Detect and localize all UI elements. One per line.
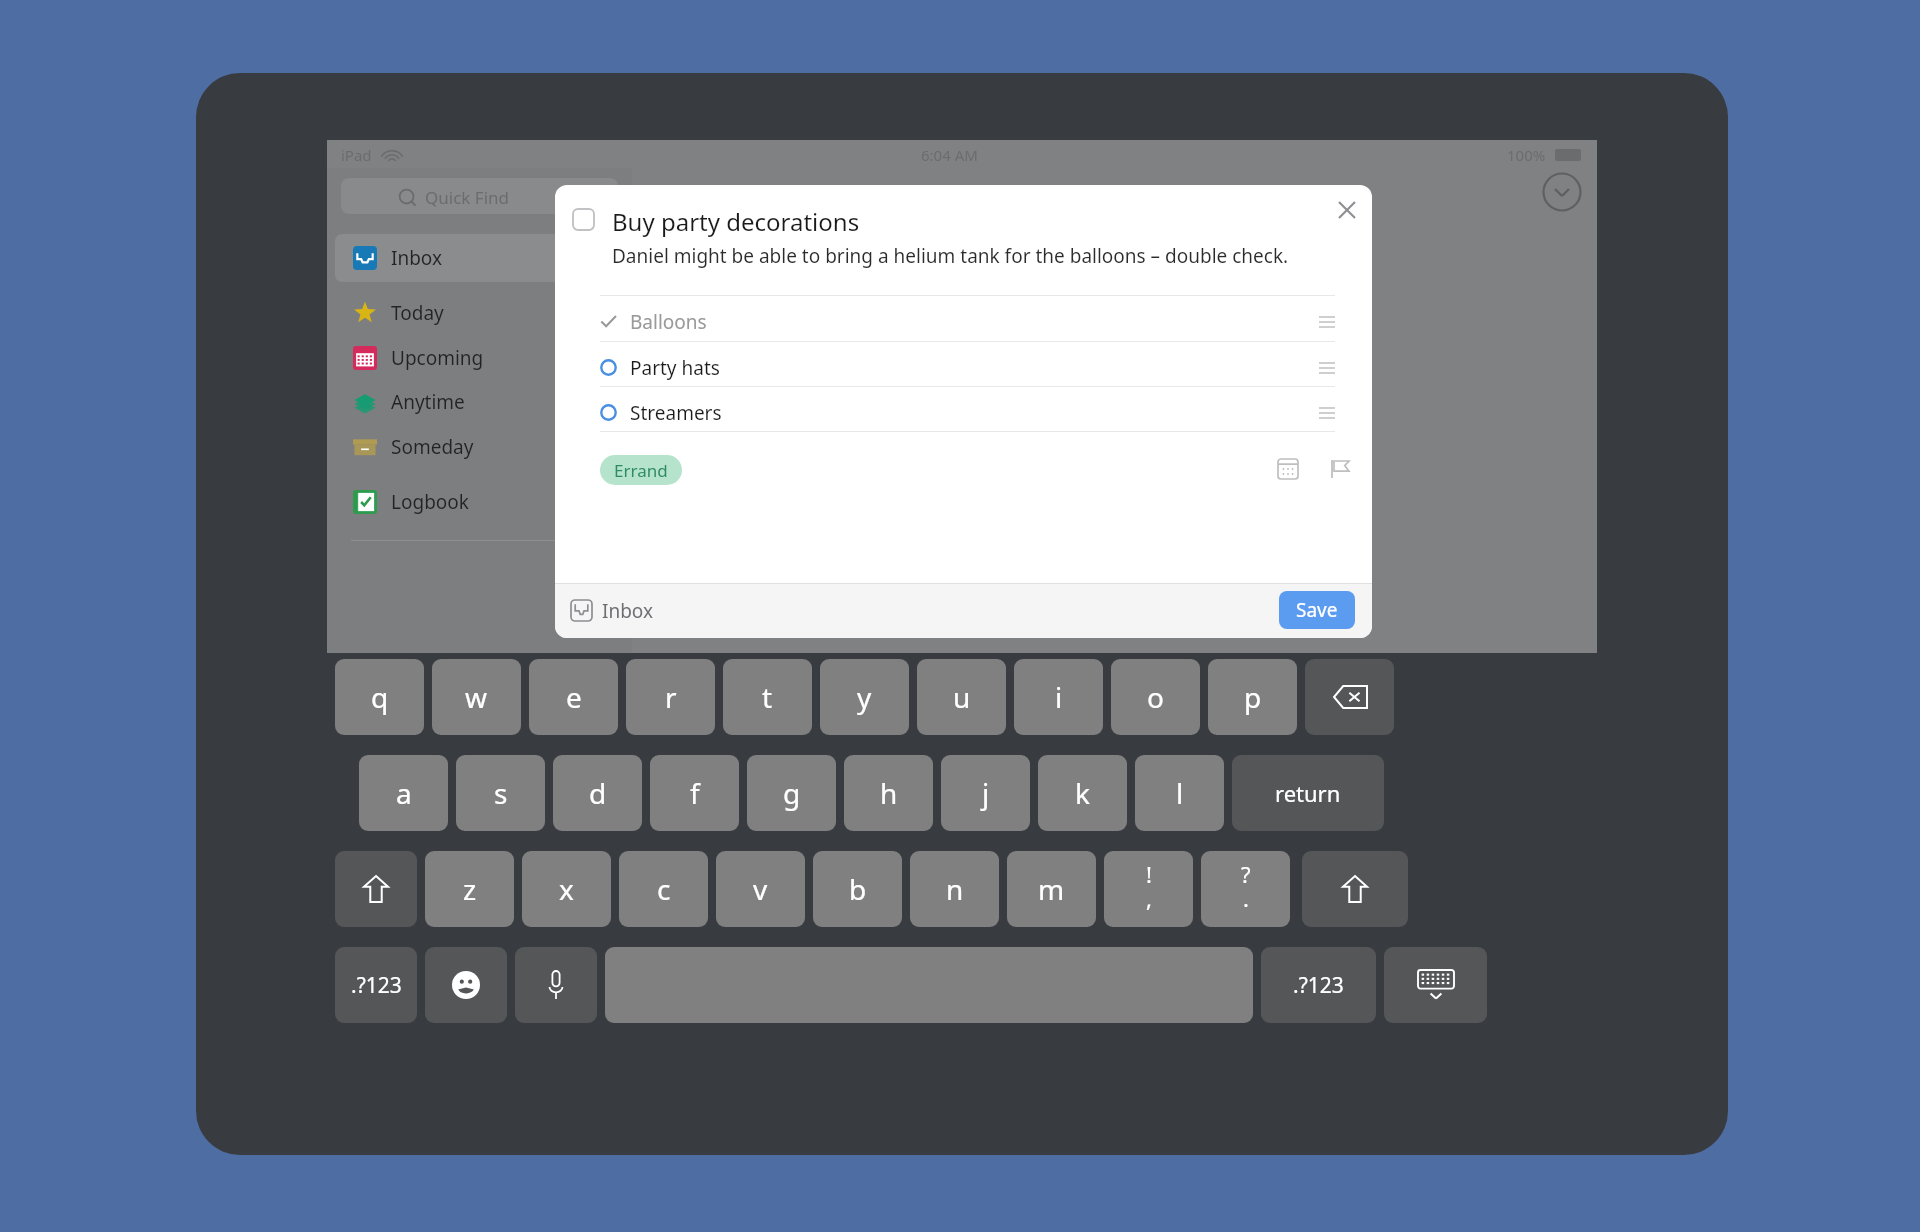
button[interactable]: Errand (600, 455, 682, 485)
staticText: Quick Find (425, 186, 509, 209)
button[interactable]: m (1007, 851, 1096, 927)
button[interactable]: Close (1328, 191, 1366, 229)
staticText: return (1275, 778, 1341, 808)
button[interactable]: s (456, 755, 545, 831)
staticText: Upcoming (391, 345, 484, 371)
button[interactable]: Balloons (600, 303, 1335, 340)
button[interactable]: Backspace (1305, 659, 1394, 735)
button[interactable]: return (1232, 755, 1384, 831)
button[interactable]: n (910, 851, 999, 927)
staticText: r (665, 678, 677, 716)
staticText: , (1146, 883, 1152, 913)
button[interactable]: .?123 (1261, 947, 1376, 1023)
staticText: ? (1241, 859, 1251, 889)
staticText: Streamers (630, 400, 722, 426)
button[interactable]: t (723, 659, 812, 735)
staticText: c (657, 870, 671, 908)
staticText: n (946, 870, 964, 908)
staticText: m (1038, 870, 1065, 908)
staticText: 6:04 AM (921, 145, 978, 165)
staticText: k (1075, 774, 1090, 812)
button[interactable]: Inbox (353, 239, 613, 277)
button[interactable]: Emoji (425, 947, 507, 1023)
button[interactable]: f (650, 755, 739, 831)
button[interactable]: p (1208, 659, 1297, 735)
button[interactable]: Logbook (353, 483, 613, 521)
staticText: y (857, 678, 872, 716)
staticText: j (982, 774, 990, 812)
staticText: Errand (614, 459, 668, 482)
staticText: f (690, 774, 700, 812)
staticText: Inbox (391, 245, 443, 271)
staticText: v (753, 870, 768, 908)
button[interactable]: h (844, 755, 933, 831)
staticText: Buy party decorations (612, 205, 860, 238)
staticText: iPad (341, 145, 372, 165)
staticText: t (762, 678, 773, 716)
staticText: Balloons (630, 309, 707, 335)
staticText: h (880, 774, 898, 812)
button[interactable]: i (1014, 659, 1103, 735)
staticText: .?123 (351, 971, 402, 1000)
staticText: u (953, 678, 971, 716)
button[interactable]: ? (1201, 851, 1290, 927)
button[interactable]: Inbox (571, 583, 980, 638)
staticText: Party hats (630, 355, 720, 381)
staticText: Inbox (602, 598, 654, 624)
button[interactable]: x (522, 851, 611, 927)
staticText: q (371, 678, 389, 716)
button[interactable]: Anytime (353, 383, 613, 421)
staticText: p (1244, 678, 1262, 716)
button[interactable]: Streamers (600, 394, 1335, 431)
staticText: b (849, 870, 867, 908)
button[interactable]: k (1038, 755, 1127, 831)
staticText: Daniel might be able to bring a helium t… (612, 243, 1289, 269)
button[interactable]: Save (1279, 591, 1355, 629)
staticText: Save (1296, 597, 1338, 623)
staticText: a (396, 774, 412, 812)
staticText: .?123 (1293, 971, 1344, 1000)
staticText: s (494, 774, 508, 812)
button[interactable]: Upcoming (353, 339, 613, 377)
button[interactable]: Shift (335, 851, 417, 927)
staticText: z (463, 870, 477, 908)
button[interactable]: Set date (1270, 451, 1306, 487)
button[interactable]: q (335, 659, 424, 735)
button[interactable]: Today (353, 294, 613, 332)
staticText: i (1055, 678, 1063, 716)
button[interactable]: d (553, 755, 642, 831)
button[interactable]: y (820, 659, 909, 735)
staticText: d (589, 774, 607, 812)
button[interactable]: a (359, 755, 448, 831)
button[interactable]: Dictate (515, 947, 597, 1023)
button[interactable]: j (941, 755, 1030, 831)
staticText: ! (1146, 859, 1152, 889)
button[interactable]: Hide keyboard (1384, 947, 1487, 1023)
button[interactable]: o (1111, 659, 1200, 735)
button[interactable]: ! (1104, 851, 1193, 927)
button[interactable]: u (917, 659, 1006, 735)
staticText: x (559, 870, 574, 908)
button[interactable]: l (1135, 755, 1224, 831)
button[interactable]: Collapse (1542, 172, 1582, 212)
button[interactable]: r (626, 659, 715, 735)
button[interactable]: g (747, 755, 836, 831)
staticText: g (783, 774, 801, 812)
button[interactable]: b (813, 851, 902, 927)
staticText: o (1147, 678, 1164, 716)
button[interactable]: w (432, 659, 521, 735)
button[interactable]: v (716, 851, 805, 927)
staticText: Anytime (391, 389, 465, 415)
button[interactable]: c (619, 851, 708, 927)
button[interactable]: Shift (1302, 851, 1408, 927)
button[interactable]: Complete task (573, 209, 594, 230)
button[interactable]: e (529, 659, 618, 735)
button[interactable]: .?123 (335, 947, 417, 1023)
staticText: l (1176, 774, 1184, 812)
button[interactable]: z (425, 851, 514, 927)
staticText: Today (391, 300, 444, 326)
button[interactable]: Set deadline (1322, 451, 1358, 487)
button[interactable]: Party hats (600, 349, 1335, 386)
button[interactable]: Someday (353, 428, 613, 466)
